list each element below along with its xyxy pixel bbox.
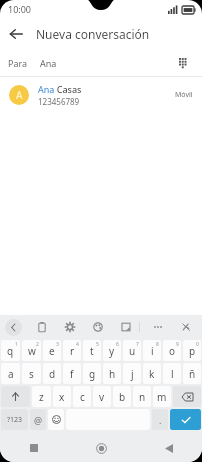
staticText: f (70, 367, 74, 381)
staticText: 5 (96, 341, 99, 348)
button[interactable]: b (113, 386, 131, 407)
staticText: ñ (189, 367, 196, 381)
staticText: 4 (76, 341, 79, 348)
staticText: n (139, 390, 146, 404)
button[interactable]: h (103, 363, 121, 384)
staticText: . (159, 414, 162, 426)
button[interactable]: z (32, 386, 51, 407)
button[interactable]: ñ (183, 363, 201, 384)
staticText: a (8, 367, 14, 381)
button[interactable]: p (183, 340, 201, 361)
button[interactable]: Theme (90, 319, 106, 335)
staticText: d (49, 367, 56, 381)
staticText: l (171, 367, 174, 381)
staticText: 9 (176, 341, 179, 348)
staticText: e (49, 344, 55, 358)
button[interactable]: Back (0, 18, 32, 50)
button[interactable]: Emoji (48, 409, 64, 430)
button[interactable]: k (143, 363, 161, 384)
button[interactable]: Backspace (173, 386, 201, 407)
button[interactable]: More options (150, 319, 166, 335)
staticText: s (29, 367, 34, 381)
staticText: 3 (56, 341, 59, 348)
staticText: A (16, 88, 23, 102)
button[interactable]: x (53, 386, 71, 407)
staticText: y (109, 344, 115, 358)
button[interactable]: A (0, 77, 202, 113)
button[interactable]: f (63, 363, 81, 384)
staticText: m (157, 390, 167, 404)
button[interactable]: a (1, 363, 20, 384)
staticText: r (70, 344, 75, 358)
staticText: p (189, 344, 196, 358)
staticText: 2 (36, 341, 39, 348)
button[interactable]: Settings (62, 319, 78, 335)
button[interactable]: o (163, 340, 181, 361)
button[interactable]: m (153, 386, 171, 407)
button[interactable]: Resize (118, 319, 134, 335)
button[interactable]: Clipboard (34, 319, 50, 335)
button[interactable]: Mute (178, 319, 194, 335)
staticText: j (131, 367, 134, 381)
button[interactable]: v (93, 386, 111, 407)
button[interactable]: w (22, 340, 41, 361)
staticText: x (59, 390, 65, 404)
staticText: 123456789 (38, 96, 80, 107)
button[interactable]: Dialpad (174, 53, 194, 73)
staticText: 10:00 (8, 3, 32, 15)
button[interactable]: g (83, 363, 101, 384)
staticText: ?123 (7, 415, 23, 425)
button[interactable]: Collapse toolbar (5, 319, 22, 336)
button[interactable]: i (143, 340, 161, 361)
button[interactable]: y (103, 340, 121, 361)
button[interactable]: ?123 (1, 409, 28, 430)
staticText: c (80, 390, 85, 404)
button[interactable]: j (123, 363, 141, 384)
staticText: z (39, 390, 44, 404)
button[interactable]: d (43, 363, 61, 384)
staticText: Ana (40, 57, 57, 69)
button[interactable]: n (133, 386, 151, 407)
staticText: q (7, 344, 14, 358)
button[interactable]: Home (68, 434, 135, 462)
staticText: w (28, 344, 36, 358)
staticText: Para (8, 57, 28, 69)
staticText: 6 (116, 341, 119, 348)
staticText: Nueva conversación (36, 26, 150, 42)
staticText: g (89, 367, 96, 381)
button[interactable]: c (73, 386, 91, 407)
staticText: b (119, 390, 126, 404)
button[interactable]: @ (30, 409, 46, 430)
button[interactable]: r (63, 340, 81, 361)
button[interactable]: t (83, 340, 101, 361)
staticText: o (169, 344, 176, 358)
button[interactable]: Enter (170, 409, 201, 430)
staticText: 0 (196, 341, 199, 348)
button[interactable]: l (163, 363, 181, 384)
button[interactable]: s (22, 363, 41, 384)
staticText: h (109, 367, 116, 381)
staticText: Ana Casas (38, 83, 82, 95)
button[interactable]: Recents (0, 434, 68, 462)
staticText: t (90, 344, 94, 358)
staticText: u (129, 344, 136, 358)
staticText: 8 (156, 341, 159, 348)
button[interactable]: Shift (1, 386, 30, 407)
staticText: v (99, 390, 105, 404)
button[interactable]: . (152, 409, 168, 430)
staticText: 7 (136, 341, 139, 348)
button[interactable]: Back (135, 434, 202, 462)
staticText: i (151, 344, 154, 358)
staticText: @ (34, 414, 43, 426)
button[interactable]: q (1, 340, 20, 361)
staticText: Móvil (175, 90, 193, 100)
staticText: 1 (15, 341, 18, 348)
staticText: k (149, 367, 155, 381)
button[interactable]: u (123, 340, 141, 361)
button[interactable]: e (43, 340, 61, 361)
